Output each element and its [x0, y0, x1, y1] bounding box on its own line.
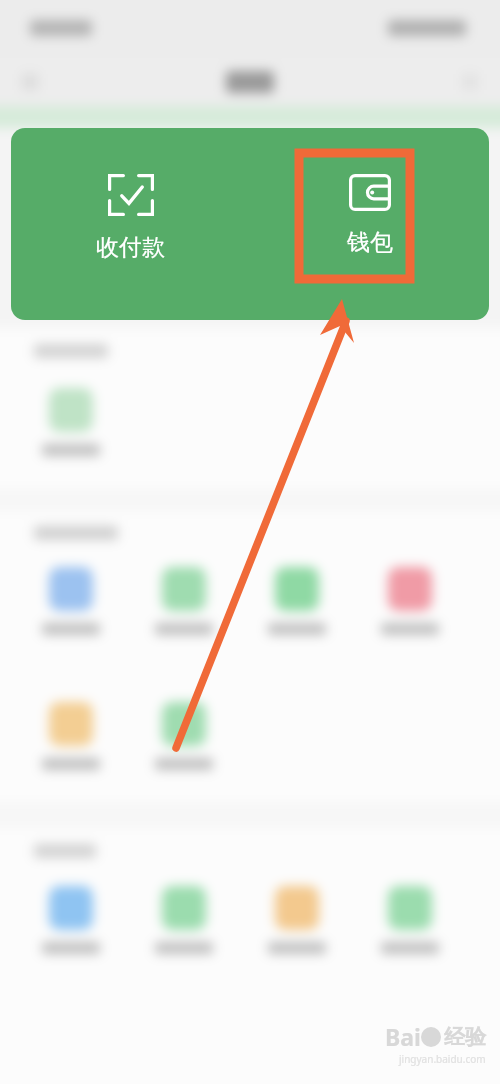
staticText: Bai [385, 1021, 421, 1052]
staticText: 经验 [444, 1024, 486, 1050]
other: 扫码收付款 [108, 174, 154, 216]
staticText: jingyan.baidu.com [399, 1052, 486, 1066]
staticText: 收付款 [96, 233, 165, 262]
button[interactable]: 钱包 [250, 128, 489, 320]
staticText: 钱包 [347, 228, 393, 257]
button[interactable]: 扫码收付款 [11, 128, 250, 320]
other: 钱包 [349, 174, 391, 211]
